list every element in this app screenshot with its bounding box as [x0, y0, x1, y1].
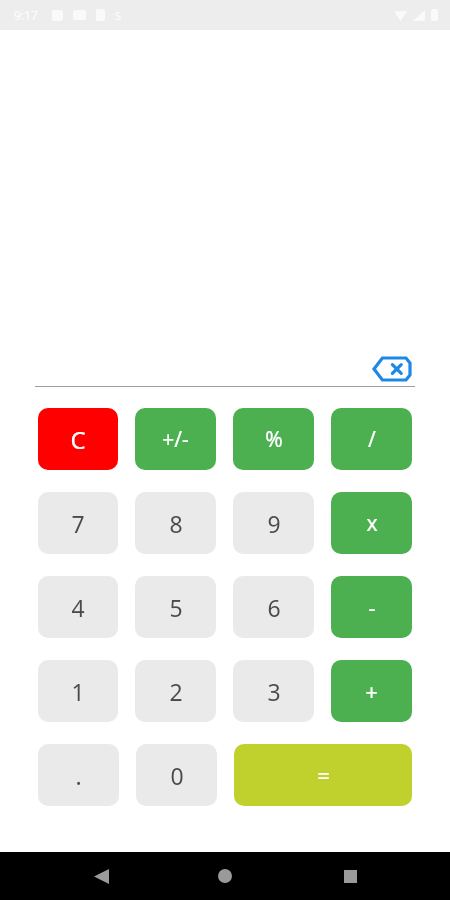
staticText: 8: [169, 508, 183, 539]
staticText: +: [365, 676, 378, 706]
button[interactable]: +/-: [135, 408, 216, 470]
staticText: 6: [267, 592, 281, 623]
button[interactable]: Backspace: [372, 356, 412, 382]
button[interactable]: =: [234, 744, 412, 806]
button[interactable]: 9: [233, 492, 314, 554]
staticText: 5: [169, 592, 183, 623]
staticText: =: [317, 760, 330, 790]
button[interactable]: x: [331, 492, 412, 554]
staticText: C: [70, 423, 86, 456]
button[interactable]: 4: [38, 576, 118, 638]
staticText: %: [265, 425, 283, 454]
button[interactable]: Recent apps: [326, 852, 374, 900]
staticText: 1: [71, 676, 85, 707]
staticText: 4: [71, 592, 85, 623]
staticText: x: [366, 509, 378, 538]
button[interactable]: 2: [135, 660, 216, 722]
staticText: /: [368, 425, 376, 454]
button[interactable]: 1: [38, 660, 118, 722]
button[interactable]: 8: [135, 492, 216, 554]
button[interactable]: %: [233, 408, 314, 470]
staticText: +/-: [162, 425, 189, 454]
staticText: 9:17: [14, 7, 38, 23]
button[interactable]: -: [331, 576, 412, 638]
staticText: S: [115, 8, 122, 23]
staticText: 3: [267, 676, 281, 707]
staticText: -: [368, 592, 376, 622]
button[interactable]: Home: [201, 852, 249, 900]
button[interactable]: 6: [233, 576, 314, 638]
staticText: 9: [267, 508, 281, 539]
button[interactable]: /: [331, 408, 412, 470]
staticText: 2: [169, 676, 183, 707]
button[interactable]: +: [331, 660, 412, 722]
button[interactable]: 5: [135, 576, 216, 638]
staticText: 0: [170, 760, 184, 791]
staticText: .: [75, 760, 82, 791]
staticText: 7: [71, 508, 85, 539]
button[interactable]: .: [38, 744, 119, 806]
button[interactable]: C: [38, 408, 118, 470]
button[interactable]: 7: [38, 492, 118, 554]
button[interactable]: 3: [233, 660, 314, 722]
button[interactable]: 0: [136, 744, 217, 806]
button[interactable]: Back: [77, 852, 125, 900]
